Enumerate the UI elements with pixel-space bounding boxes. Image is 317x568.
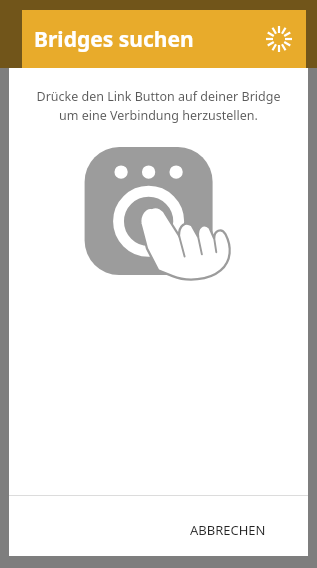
other: Suche läuft xyxy=(264,24,294,54)
staticText: Drücke den Link Button auf deiner Bridge… xyxy=(19,88,298,124)
staticText: Bridges suchen xyxy=(34,25,194,54)
button[interactable]: ABBRECHEN xyxy=(168,505,288,555)
staticText: ABBRECHEN xyxy=(190,521,266,539)
